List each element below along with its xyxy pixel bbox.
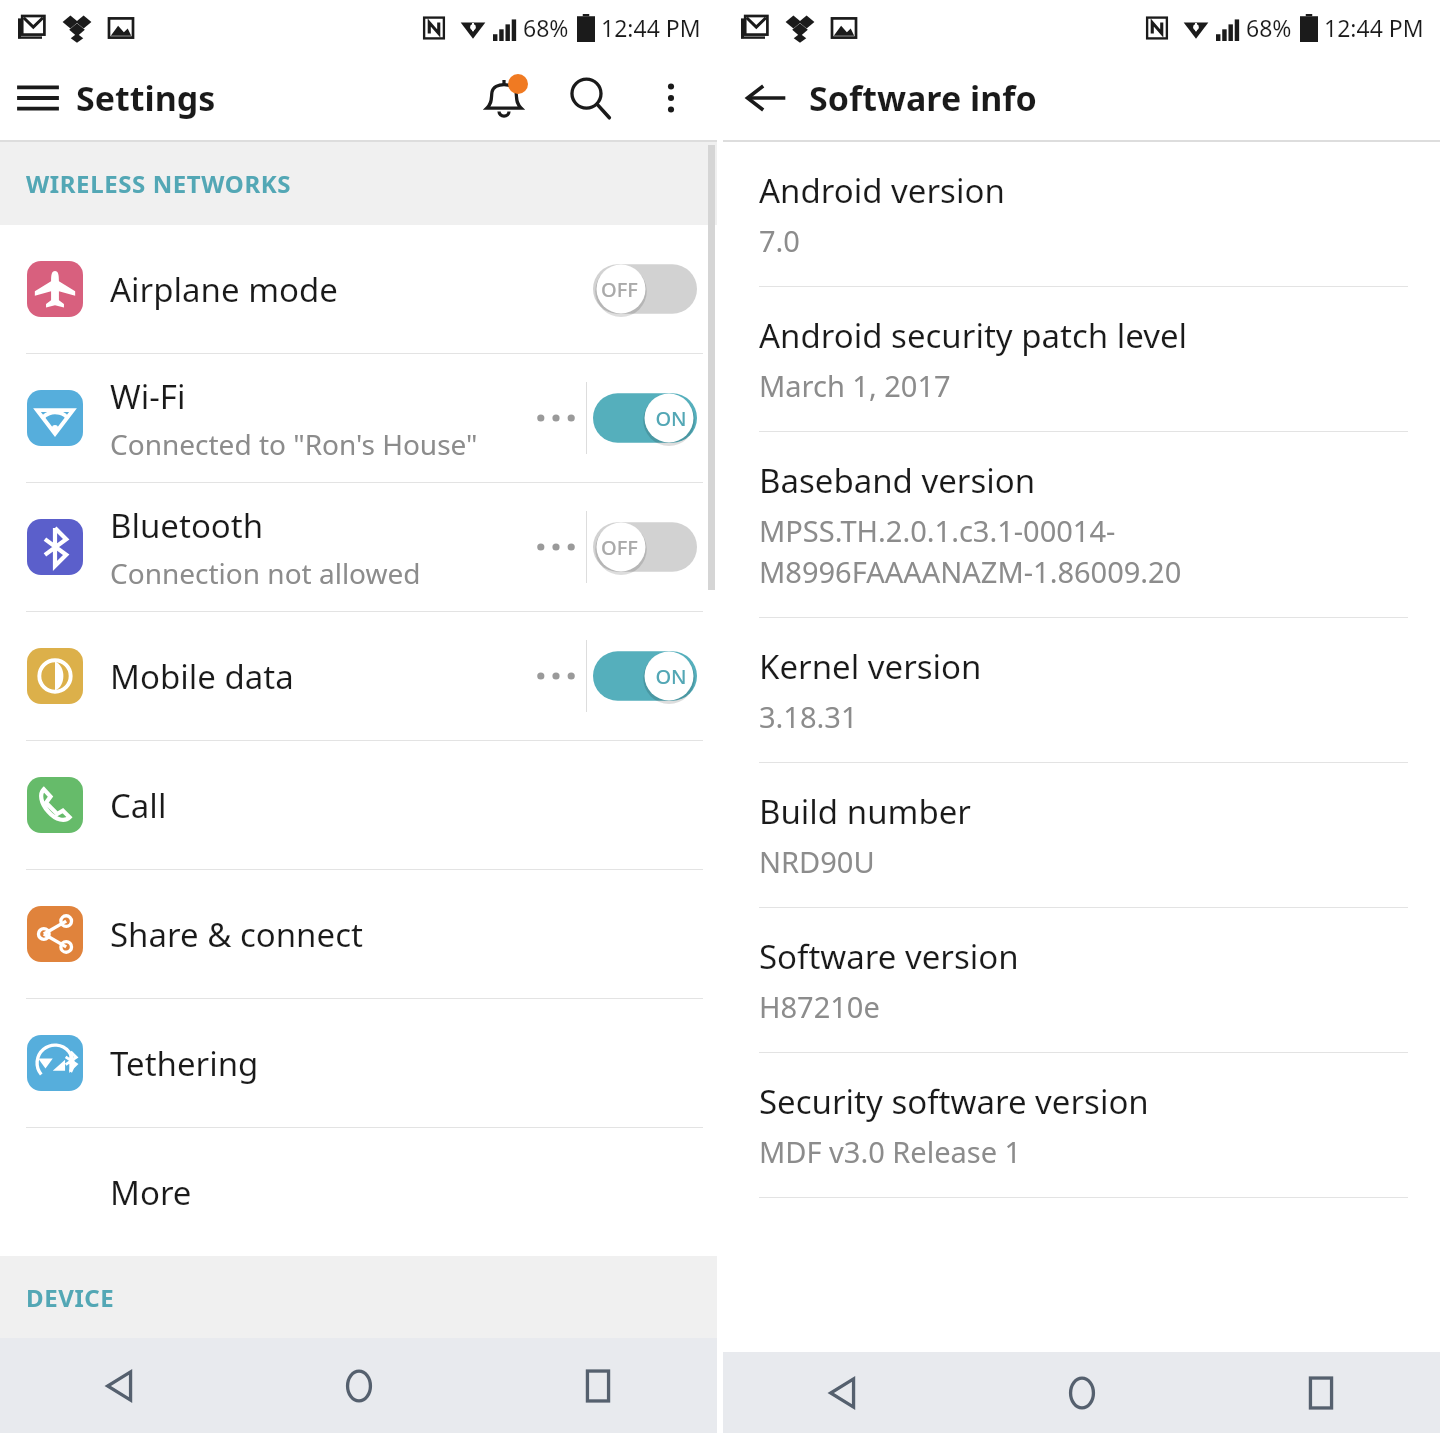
staticText: Connected to "Ron's House" [110,425,478,463]
staticText: H87210e [759,987,880,1026]
button[interactable]: Menu [0,60,76,136]
button[interactable]: More [0,1128,717,1256]
staticText: Android security patch level [759,313,1188,358]
staticText: More [110,1170,192,1215]
staticText: Call [110,783,167,828]
staticText: DEVICE [26,1281,115,1314]
staticText: Tethering [110,1041,259,1086]
button[interactable]: Wi-Fi [0,354,717,482]
button[interactable]: Back [0,1338,239,1433]
staticText: MPSS.TH.2.0.1.c3.1-00014- [759,511,1116,550]
staticText: WIRELESS NETWORKS [26,167,292,200]
button[interactable]: Home [962,1352,1201,1433]
staticText: M8996FAAAANAZM-1.86009.20 [759,552,1182,591]
button[interactable]: Share & connect [0,870,717,998]
staticText: Software info [809,75,1037,121]
staticText: Build number [759,789,971,834]
staticText: Settings [76,75,216,121]
staticText: Wi-Fi [110,374,186,419]
staticText: Kernel version [759,644,982,689]
button[interactable]: ON [587,354,703,482]
staticText: Bluetooth [110,503,264,548]
button[interactable]: Software version [723,908,1440,1052]
staticText: 7.0 [759,221,800,260]
staticText: NRD90U [759,842,875,881]
staticText: Share & connect [110,912,363,957]
button[interactable]: Airplane mode [0,225,717,353]
staticText: Android version [759,168,1005,213]
button[interactable]: Kernel version [723,618,1440,762]
button[interactable]: Android security patch level [723,287,1440,431]
staticText: March 1, 2017 [759,366,951,405]
button[interactable]: Home [239,1338,478,1433]
button[interactable]: Mobile data [0,612,717,740]
button[interactable]: Android version [723,142,1440,286]
staticText: 12:44 PM [601,12,701,43]
staticText: ON [655,663,687,690]
button[interactable]: More options [633,60,709,136]
staticText: 3.18.31 [759,697,858,736]
staticText: 12:44 PM [1324,12,1424,43]
staticText: Mobile data [110,654,294,699]
button[interactable]: Wi-Fi options [526,354,586,482]
button[interactable]: OFF [587,225,703,353]
staticText: Security software version [759,1079,1149,1124]
staticText: OFF [601,534,638,561]
button[interactable]: Baseband version [723,432,1440,617]
button[interactable]: Security software version [723,1053,1440,1197]
button[interactable]: Mobile data options [526,612,586,740]
staticText: Connection not allowed [110,554,421,592]
button[interactable]: Bluetooth [0,483,717,611]
staticText: MDF v3.0 Release 1 [759,1132,1022,1171]
staticText: 68% [1246,12,1292,43]
button[interactable]: Search [547,55,633,140]
staticText: 68% [523,12,569,43]
staticText: OFF [601,276,638,303]
button[interactable]: ON [587,612,703,740]
button[interactable]: Tethering [0,999,717,1127]
button[interactable]: Recents [478,1338,717,1433]
button[interactable]: Recents [1201,1352,1440,1433]
button[interactable]: Back [723,55,809,140]
button[interactable]: Bluetooth options [526,483,586,611]
button[interactable]: Notifications [461,55,547,140]
staticText: Baseband version [759,458,1036,503]
button[interactable]: Call [0,741,717,869]
button[interactable]: Back [723,1352,962,1433]
staticText: ON [655,405,687,432]
button[interactable]: Build number [723,763,1440,907]
staticText: Software version [759,934,1019,979]
staticText: Airplane mode [110,267,338,312]
button[interactable]: OFF [587,483,703,611]
